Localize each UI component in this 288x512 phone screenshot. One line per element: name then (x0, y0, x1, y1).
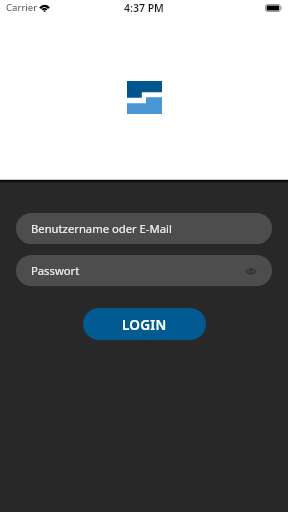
button[interactable]: LOGIN (83, 308, 206, 340)
button[interactable]: Benutzername oder E-Mail (16, 213, 272, 244)
staticText: 4:37 PM (124, 1, 164, 15)
staticText: LOGIN (122, 315, 167, 334)
staticText: Passwort (31, 263, 80, 278)
staticText: Carrier (6, 1, 38, 14)
staticText: Benutzername oder E-Mail (31, 221, 172, 236)
button[interactable]: Passwort (16, 255, 272, 286)
button[interactable]: Show password (241, 261, 261, 281)
